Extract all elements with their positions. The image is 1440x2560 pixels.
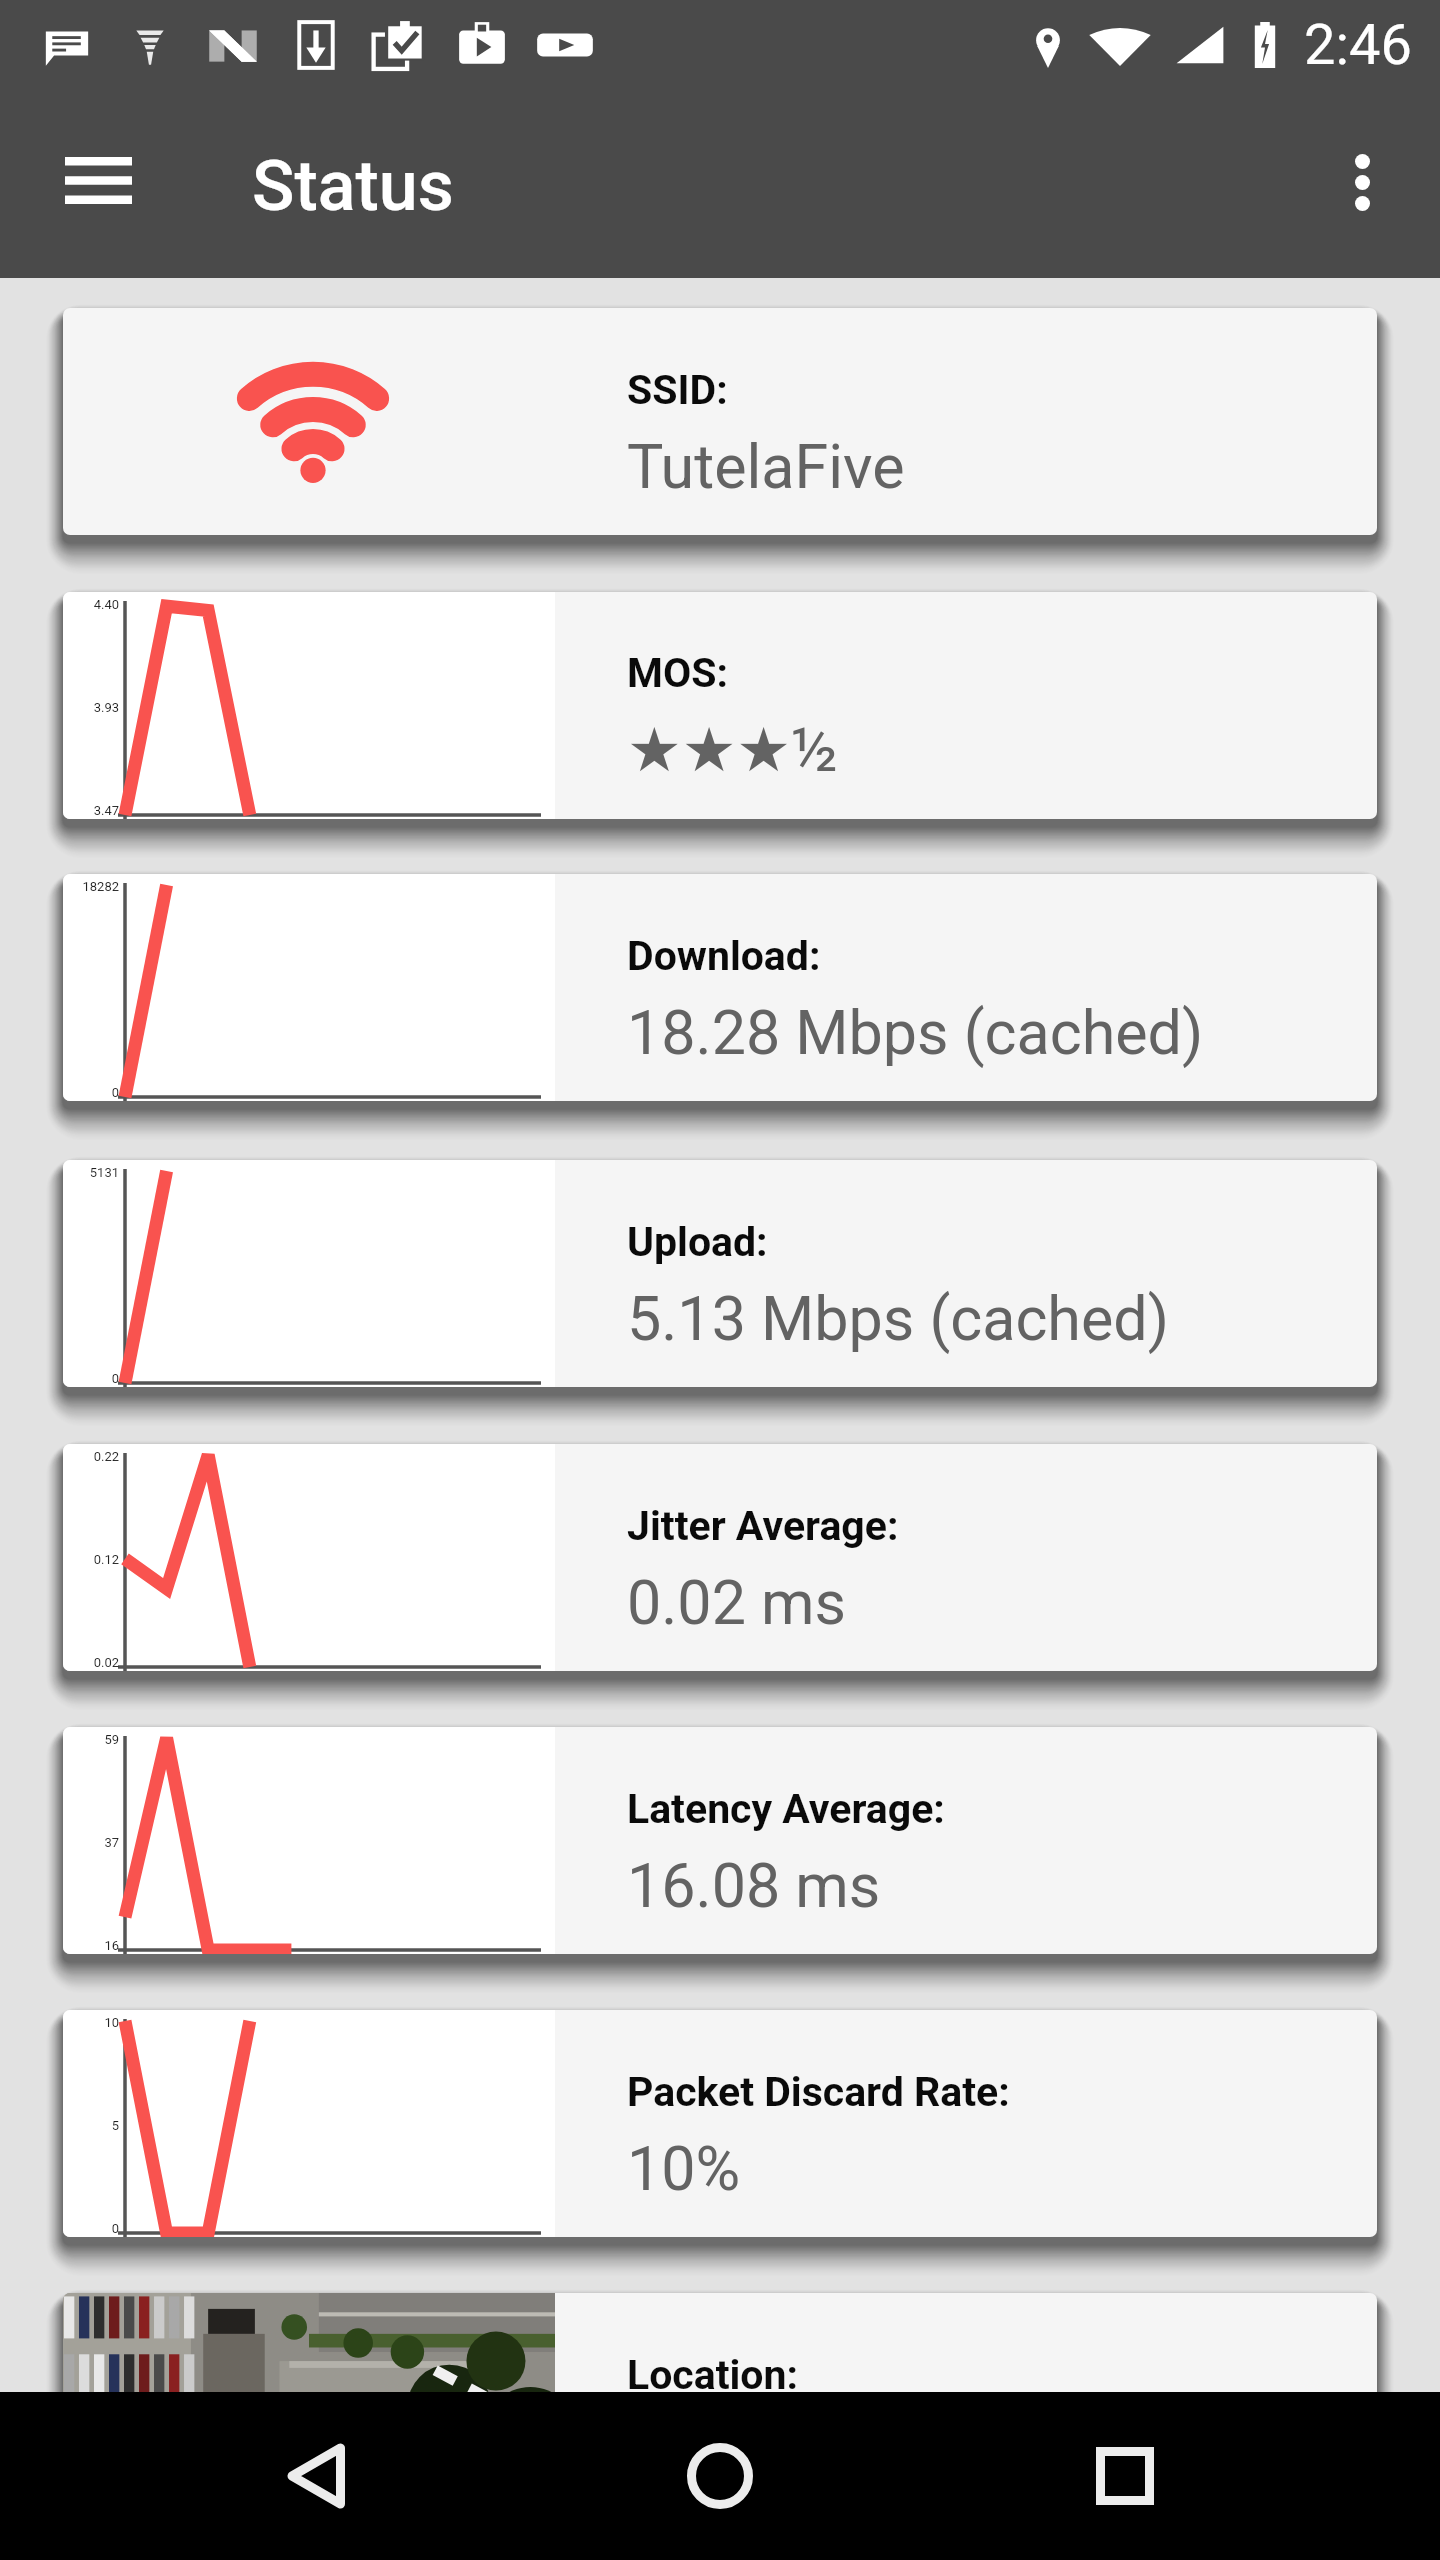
- staticText: 0.02: [63, 1655, 119, 1670]
- staticText: 0.02 ms: [627, 1567, 847, 1638]
- staticText: 3.93: [63, 700, 119, 715]
- staticText: 37: [63, 1835, 119, 1850]
- button[interactable]: Back: [244, 2404, 388, 2548]
- staticText: 0: [63, 1085, 119, 1100]
- button[interactable]: 0.22: [63, 1444, 1377, 1671]
- button[interactable]: More options: [1305, 125, 1420, 240]
- staticText: 18.28 Mbps (cached): [627, 997, 1204, 1068]
- button[interactable]: Recent apps: [1053, 2404, 1197, 2548]
- button[interactable]: Open navigation drawer: [33, 115, 163, 245]
- button[interactable]: Home: [648, 2404, 792, 2548]
- button[interactable]: Location:: [63, 2293, 1377, 2520]
- button[interactable]: 59: [63, 1727, 1377, 1954]
- button[interactable]: 10: [63, 2010, 1377, 2237]
- staticText: Packet Discard Rate:: [627, 2068, 1010, 2116]
- staticText: Jitter Average:: [627, 1502, 899, 1550]
- staticText: 18282: [63, 879, 119, 894]
- button[interactable]: SSID:: [63, 308, 1377, 535]
- staticText: 10%: [627, 2133, 741, 2204]
- staticText: 5.13 Mbps (cached): [627, 1283, 1169, 1354]
- staticText: Latency Average:: [627, 1785, 945, 1833]
- staticText: 2:46: [1304, 12, 1412, 78]
- staticText: 0.22: [63, 1449, 119, 1464]
- staticText: 5131: [63, 1165, 119, 1180]
- staticText: MOS:: [627, 649, 728, 697]
- staticText: 16: [63, 1938, 119, 1953]
- staticText: ★★★½: [627, 714, 839, 786]
- button[interactable]: 18282: [63, 874, 1377, 1101]
- staticText: 10: [63, 2015, 119, 2030]
- staticText: TutelaFive: [627, 431, 905, 502]
- staticText: 5: [63, 2118, 119, 2133]
- staticText: Status: [252, 145, 454, 227]
- staticText: 16.08 ms: [627, 1850, 881, 1921]
- button[interactable]: 5131: [63, 1160, 1377, 1387]
- staticText: 0: [63, 1371, 119, 1386]
- staticText: SSID:: [627, 366, 728, 414]
- staticText: 0.12: [63, 1552, 119, 1567]
- staticText: 59: [63, 1732, 119, 1747]
- staticText: Location:: [627, 2351, 799, 2399]
- staticText: Download:: [627, 932, 821, 980]
- staticText: 3.47: [63, 803, 119, 818]
- button[interactable]: 4.40: [63, 592, 1377, 819]
- staticText: Upload:: [627, 1218, 768, 1266]
- staticText: 4.40: [63, 597, 119, 612]
- staticText: 0: [63, 2221, 119, 2236]
